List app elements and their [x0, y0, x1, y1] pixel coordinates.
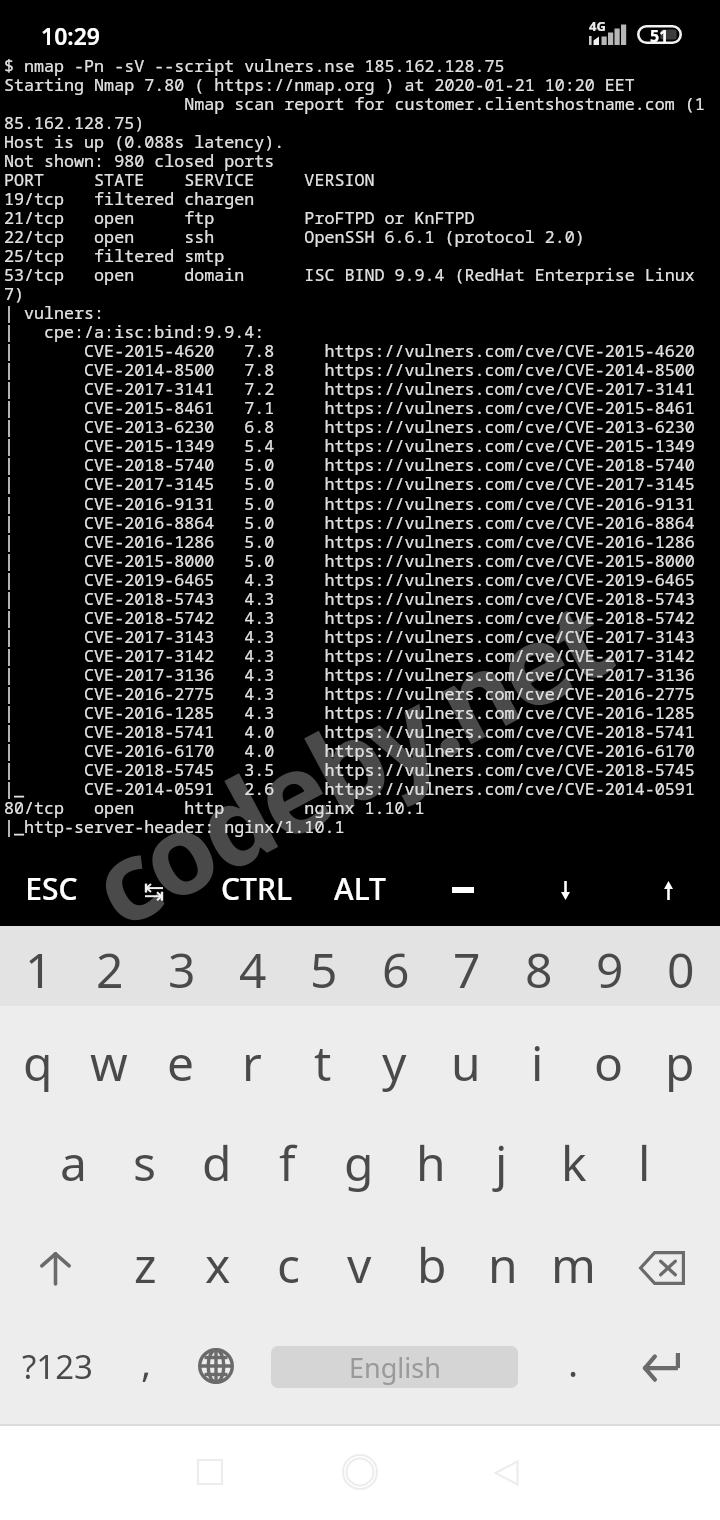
staticText: | CVE-2018-5741 4.0 https://vulners.com/…: [4, 720, 695, 743]
staticText: 85.162.128.75): [4, 111, 145, 134]
button[interactable]: Arrow up: [617, 854, 720, 922]
staticText: o: [594, 1030, 624, 1095]
staticText: a: [60, 1130, 87, 1195]
button[interactable]: English: [271, 1346, 518, 1388]
staticText: d: [202, 1130, 232, 1195]
staticText: Not shown: 980 closed ports: [4, 149, 275, 172]
staticText: | CVE-2015-8461 7.1 https://vulners.com/…: [4, 396, 695, 419]
button[interactable]: Minus: [411, 854, 514, 922]
staticText: 7: [453, 937, 481, 1002]
staticText: Starting Nmap 7.80 ( https://nmap.org ) …: [4, 73, 635, 96]
staticText: n: [488, 1232, 518, 1297]
button[interactable]: 5: [288, 923, 359, 1016]
button[interactable]: l: [609, 1116, 680, 1209]
staticText: b: [417, 1232, 447, 1297]
button[interactable]: r: [216, 1016, 287, 1109]
button[interactable]: ALT: [308, 854, 411, 922]
staticText: y: [382, 1030, 407, 1095]
button[interactable]: ESC: [0, 854, 102, 922]
staticText: $ nmap -Pn -sV --script vulners.nse 185.…: [4, 54, 505, 77]
staticText: 9: [596, 937, 624, 1002]
button[interactable]: w: [73, 1016, 144, 1109]
staticText: 2: [96, 937, 124, 1002]
button[interactable]: g: [323, 1116, 394, 1209]
staticText: 21/tcp open ftp ProFTPD or KnFTPD: [4, 206, 475, 229]
button[interactable]: Home: [324, 1436, 396, 1508]
button[interactable]: z: [110, 1218, 181, 1311]
staticText: | vulners:: [4, 301, 105, 324]
button[interactable]: t: [287, 1016, 358, 1109]
button[interactable]: s: [109, 1116, 180, 1209]
button[interactable]: 6: [360, 923, 431, 1016]
button[interactable]: Tab: [102, 854, 205, 922]
staticText: |_http-server-header: nginx/1.10.1: [4, 815, 345, 838]
button[interactable]: .: [543, 1312, 603, 1412]
staticText: v: [347, 1232, 372, 1297]
button[interactable]: v: [324, 1218, 395, 1311]
button[interactable]: h: [395, 1116, 466, 1209]
button[interactable]: y: [359, 1016, 430, 1109]
staticText: | CVE-2017-3145 5.0 https://vulners.com/…: [4, 472, 695, 495]
staticText: 10:29: [41, 20, 100, 51]
button[interactable]: n: [467, 1218, 538, 1311]
button[interactable]: m: [538, 1218, 609, 1311]
button[interactable]: q: [2, 1016, 73, 1109]
staticText: c: [277, 1232, 301, 1297]
button[interactable]: Recent apps: [174, 1436, 246, 1508]
button[interactable]: 1: [3, 923, 74, 1016]
button[interactable]: 8: [503, 923, 574, 1016]
button[interactable]: ?123: [0, 1316, 115, 1416]
button[interactable]: 2: [74, 923, 145, 1016]
staticText: | CVE-2018-5743 4.3 https://vulners.com/…: [4, 587, 695, 610]
staticText: h: [416, 1130, 446, 1195]
staticText: f: [279, 1130, 296, 1195]
staticText: q: [23, 1030, 53, 1095]
button[interactable]: u: [430, 1016, 501, 1109]
button[interactable]: o: [573, 1016, 644, 1109]
button[interactable]: 0: [645, 923, 716, 1016]
button[interactable]: b: [396, 1218, 467, 1311]
button[interactable]: ,: [116, 1312, 176, 1412]
staticText: codeby.net: [65, 562, 632, 926]
button[interactable]: f: [252, 1116, 323, 1209]
staticText: 5: [310, 937, 338, 1002]
button[interactable]: Backspace: [606, 1221, 718, 1314]
staticText: s: [133, 1130, 156, 1195]
staticText: | CVE-2016-6170 4.0 https://vulners.com/…: [4, 739, 695, 762]
button[interactable]: 3: [146, 923, 217, 1016]
button[interactable]: p: [644, 1016, 715, 1109]
button[interactable]: c: [253, 1218, 324, 1311]
button[interactable]: e: [145, 1016, 216, 1109]
staticText: .: [568, 1336, 579, 1388]
button[interactable]: Change language: [176, 1316, 256, 1416]
button[interactable]: 7: [431, 923, 502, 1016]
staticText: 8: [525, 937, 553, 1002]
staticText: Host is up (0.088s latency).: [4, 130, 285, 153]
button[interactable]: j: [466, 1116, 537, 1209]
button[interactable]: i: [502, 1016, 573, 1109]
staticText: ,: [141, 1336, 152, 1388]
staticText: PORT STATE SERVICE VERSION: [4, 168, 375, 191]
staticText: | CVE-2017-3142 4.3 https://vulners.com/…: [4, 644, 695, 667]
staticText: u: [451, 1030, 481, 1095]
staticText: m: [551, 1232, 596, 1297]
staticText: | CVE-2016-2775 4.3 https://vulners.com/…: [4, 682, 695, 705]
button[interactable]: Enter: [616, 1317, 706, 1417]
staticText: | CVE-2016-1286 5.0 https://vulners.com/…: [4, 530, 695, 553]
button[interactable]: x: [182, 1218, 253, 1311]
button[interactable]: 9: [574, 923, 645, 1016]
button[interactable]: a: [38, 1116, 109, 1209]
staticText: 51: [650, 25, 669, 44]
staticText: | CVE-2018-5740 5.0 https://vulners.com/…: [4, 453, 695, 476]
button[interactable]: k: [538, 1116, 609, 1209]
staticText: | CVE-2018-5742 4.3 https://vulners.com/…: [4, 606, 695, 629]
button[interactable]: d: [181, 1116, 252, 1209]
button[interactable]: 4: [217, 923, 288, 1016]
staticText: t: [314, 1030, 332, 1095]
button[interactable]: Shift: [0, 1222, 110, 1315]
button[interactable]: CTRL: [205, 854, 308, 922]
button[interactable]: Arrow down: [514, 854, 617, 922]
staticText: w: [90, 1030, 128, 1095]
staticText: ?123: [22, 1344, 93, 1389]
